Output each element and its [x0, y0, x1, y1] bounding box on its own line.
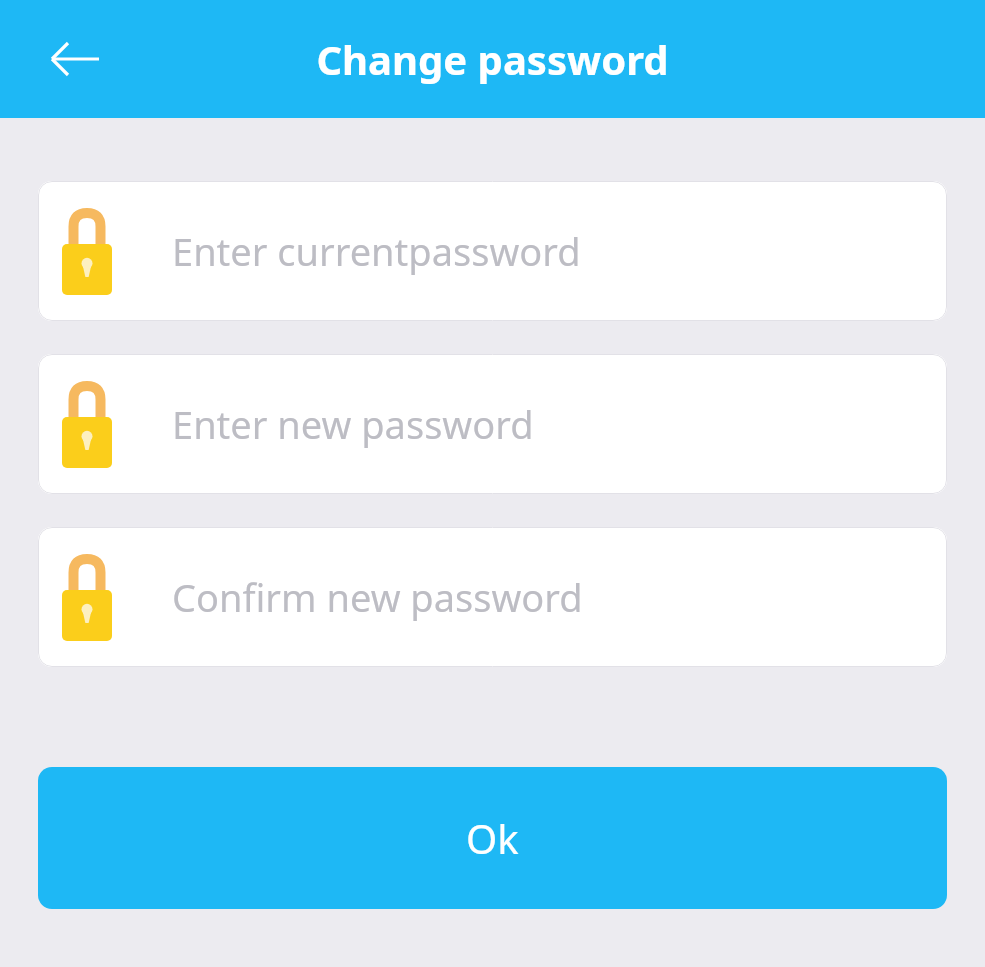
button[interactable]: Ok: [38, 767, 947, 909]
staticText: Ok: [466, 811, 519, 865]
button[interactable]: Back: [40, 24, 110, 94]
staticText: Enter currentpassword: [172, 225, 581, 277]
button[interactable]: Confirm new password: [38, 527, 947, 667]
button[interactable]: Enter new password: [38, 354, 947, 494]
staticText: Confirm new password: [172, 571, 583, 623]
button[interactable]: Enter currentpassword: [38, 181, 947, 321]
staticText: Change password: [316, 32, 669, 86]
staticText: Enter new password: [172, 398, 534, 450]
